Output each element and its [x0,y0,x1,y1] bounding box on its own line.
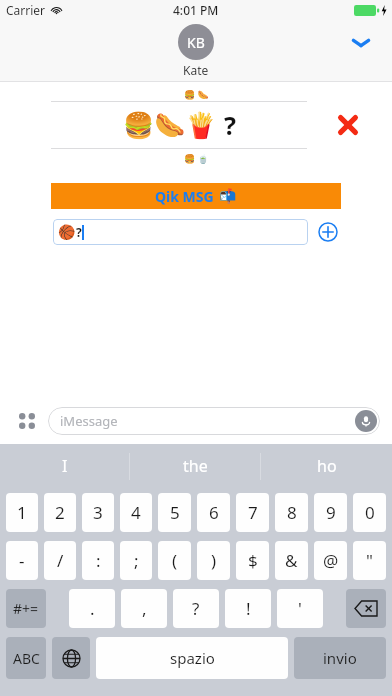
button[interactable]: ABC [6,637,46,679]
button[interactable]: ( [158,541,191,580]
button[interactable]: ho [261,444,392,488]
button[interactable]: KB [178,24,214,78]
staticText: ? [224,108,236,142]
button[interactable]: Clear [331,108,365,142]
button[interactable]: 2 [44,493,76,532]
button[interactable]: $ [236,541,269,580]
button[interactable]: ; [120,541,152,580]
staticText: ' [298,597,302,620]
staticText: @ [323,549,339,572]
button[interactable]: . [69,589,115,628]
staticText: ABC [13,649,40,668]
staticText: 4 [131,501,141,524]
button[interactable]: 1 [6,493,38,532]
staticText: 🍔 🌭 [184,88,209,100]
staticText: 4:01 PM [173,2,219,18]
button[interactable]: : [82,541,114,580]
button[interactable]: Qik MSG [51,183,341,209]
staticText: " [366,549,373,572]
staticText: ! [246,597,251,620]
staticText: 📬 [219,188,237,204]
staticText: : [96,549,101,572]
button[interactable]: 7 [236,493,269,532]
staticText: / [57,549,64,572]
button[interactable]: , [121,589,167,628]
staticText: ( [172,549,178,572]
staticText: the [183,455,208,477]
button[interactable]: Apps [6,400,48,442]
staticText: 🍔 🍵 [184,152,209,164]
button[interactable]: 3 [82,493,114,532]
staticText: ) [211,549,217,572]
button[interactable]: 4 [120,493,152,532]
staticText: , [142,597,147,620]
staticText: & [285,549,298,572]
staticText: 2 [55,501,65,524]
staticText: KB [187,33,205,52]
staticText: Carrier [6,2,46,18]
button[interactable]: spazio [96,637,288,679]
button[interactable]: Collapse [344,26,378,60]
button[interactable]: Add [315,219,341,245]
button[interactable]: - [6,541,38,580]
staticText: 🍔🌭🍟 [123,111,217,140]
staticText: ? [192,597,200,620]
staticText: spazio [170,648,215,668]
staticText: . [90,597,95,620]
button[interactable]: #+= [6,589,46,628]
button[interactable]: 🏀 [53,219,308,245]
other: Dictate [355,410,377,432]
staticText: ; [134,549,139,572]
button[interactable]: Backspace [346,589,386,628]
button[interactable]: I [0,444,130,488]
button[interactable]: ) [197,541,230,580]
button[interactable]: invio [294,637,386,679]
button[interactable]: " [353,541,386,580]
button[interactable]: the [130,444,261,488]
button[interactable]: / [44,541,76,580]
staticText: invio [323,648,357,668]
staticText: #+= [13,599,39,618]
staticText: 5 [170,501,180,524]
staticText: ? [76,224,82,240]
button[interactable]: 6 [197,493,230,532]
staticText: I [62,455,68,477]
staticText: - [19,549,25,572]
staticText: 3 [93,501,103,524]
button[interactable]: 8 [275,493,308,532]
staticText: iMessage [60,412,118,430]
button[interactable]: ? [173,589,219,628]
button[interactable]: 0 [353,493,386,532]
staticText: Kate [183,62,209,78]
button[interactable]: @ [314,541,347,580]
staticText: 7 [248,501,258,524]
button[interactable]: 5 [158,493,191,532]
button[interactable]: Change keyboard [52,637,90,679]
staticText: 8 [287,501,297,524]
button[interactable]: 🍔🌭🍟 [51,102,307,148]
button[interactable]: ' [277,589,323,628]
staticText: $ [248,549,258,572]
staticText: 🏀 [58,224,76,240]
staticText: 6 [209,501,219,524]
button[interactable]: & [275,541,308,580]
button[interactable]: 9 [314,493,347,532]
staticText: 9 [326,501,336,524]
staticText: ho [317,455,337,477]
button[interactable]: ! [225,589,271,628]
staticText: 1 [17,501,27,524]
button[interactable]: iMessage [48,407,380,435]
staticText: 0 [365,501,375,524]
staticText: Qik MSG [155,187,214,206]
